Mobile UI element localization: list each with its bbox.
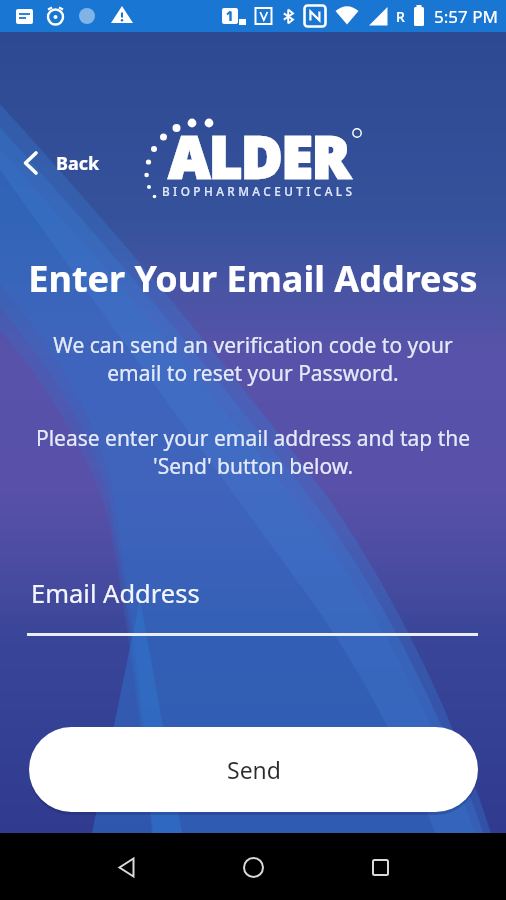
staticText: 5:57 PM xyxy=(434,5,498,28)
button[interactable] xyxy=(223,839,283,895)
button[interactable] xyxy=(96,839,156,895)
staticText: Back xyxy=(56,151,100,176)
staticText: Send xyxy=(227,754,281,785)
staticText: Email Address xyxy=(31,576,200,611)
button[interactable] xyxy=(350,839,410,895)
staticText: ALDER xyxy=(169,118,350,194)
staticText: Please enter your email address and tap … xyxy=(0,424,506,480)
button[interactable]: Email Address xyxy=(27,576,478,636)
staticText: BIOPHARMACEUTICALS xyxy=(162,183,356,199)
staticText: We can send an verification code to your… xyxy=(0,331,506,387)
staticText: R xyxy=(396,7,405,26)
button[interactable]: Send xyxy=(29,727,478,812)
staticText: Enter Your Email Address xyxy=(0,254,506,303)
button[interactable]: Back xyxy=(14,142,108,184)
staticText: ALDER xyxy=(169,118,350,194)
